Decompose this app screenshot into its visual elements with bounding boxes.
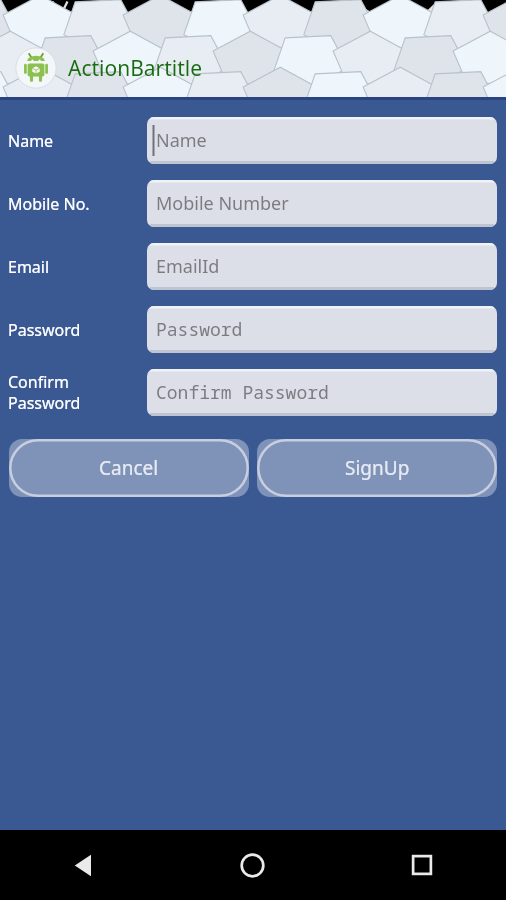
button[interactable]: Cancel <box>9 439 249 497</box>
staticText: Email <box>8 256 147 278</box>
staticText: ActionBartitle <box>68 54 203 83</box>
button[interactable]: Back <box>0 830 168 900</box>
staticText: Password <box>156 317 243 342</box>
staticText: EmailId <box>156 254 220 279</box>
button[interactable]: Confirm Password <box>147 369 497 416</box>
button[interactable]: SignUp <box>257 439 497 497</box>
staticText: 1:18 <box>463 7 497 30</box>
staticText: SignUp <box>345 455 410 481</box>
button[interactable]: Mobile Number <box>147 180 497 227</box>
button[interactable]: Recents <box>337 830 506 900</box>
button[interactable]: EmailId <box>147 243 497 290</box>
button[interactable]: Password <box>147 306 497 353</box>
button[interactable]: Home <box>168 830 337 900</box>
staticText: Confirm Password <box>156 380 329 405</box>
staticText: Name <box>156 128 207 153</box>
staticText: Name <box>8 130 147 152</box>
button[interactable]: Name <box>147 117 497 164</box>
staticText: Mobile Number <box>156 191 289 216</box>
staticText: Cancel <box>99 455 159 481</box>
staticText: Mobile No. <box>8 193 147 215</box>
staticText: Password <box>8 319 147 341</box>
staticText: Confirm Password <box>8 371 147 414</box>
